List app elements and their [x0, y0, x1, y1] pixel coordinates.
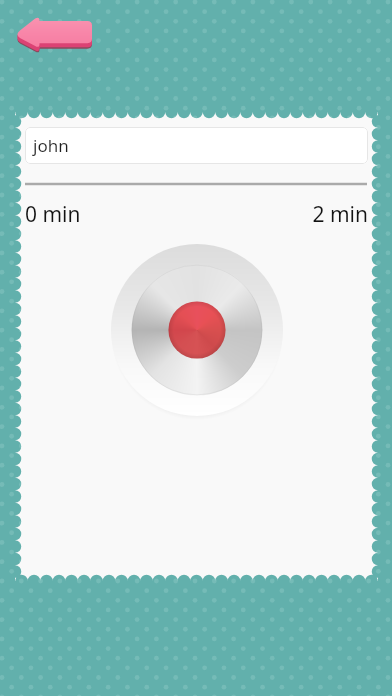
button[interactable]: Back — [17, 16, 92, 54]
staticText: 2 min — [145, 200, 368, 229]
button[interactable]: Record — [111, 244, 283, 416]
staticText: john — [33, 134, 69, 157]
staticText: 0 min — [25, 200, 145, 229]
button[interactable]: john — [25, 127, 368, 164]
